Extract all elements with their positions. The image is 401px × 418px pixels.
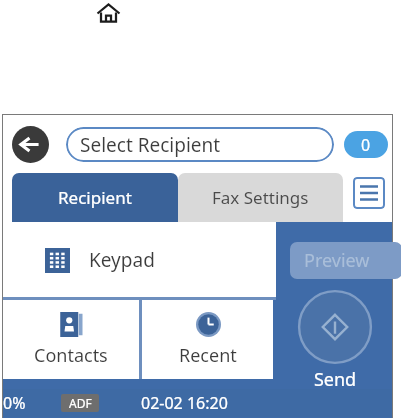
staticText: 02-02 16:20 — [141, 392, 228, 414]
staticText: Preview — [304, 248, 370, 273]
button[interactable]: Recipient — [12, 173, 178, 222]
staticText: ADF — [69, 395, 92, 411]
button[interactable]: Keypad — [3, 222, 276, 297]
button[interactable]: Preview — [290, 242, 401, 279]
button[interactable]: Back — [12, 126, 49, 163]
staticText: 0% — [3, 392, 26, 414]
button[interactable]: Select Recipient — [66, 127, 334, 162]
button[interactable]: Recent — [142, 300, 273, 379]
staticText: Recipient — [58, 186, 132, 209]
button[interactable]: Contacts — [3, 300, 139, 379]
staticText: Contacts — [34, 343, 108, 368]
button[interactable]: 0 — [344, 131, 388, 158]
staticText: Recent — [179, 343, 237, 368]
staticText: Select Recipient — [80, 132, 221, 158]
staticText: Keypad — [89, 247, 155, 273]
button[interactable]: Menu — [353, 177, 385, 209]
button[interactable]: Send — [298, 290, 372, 364]
button[interactable]: Home — [96, 1, 121, 26]
staticText: Fax Settings — [212, 186, 309, 209]
staticText: 0 — [361, 134, 371, 156]
button[interactable]: Fax Settings — [178, 173, 343, 222]
staticText: Send — [298, 367, 372, 392]
